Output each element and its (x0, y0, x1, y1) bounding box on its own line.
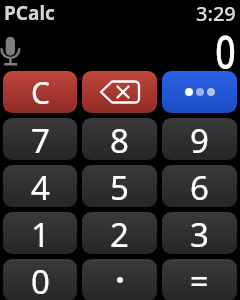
staticText: PCalc (4, 0, 55, 26)
button[interactable] (162, 71, 237, 113)
staticText: 2 (110, 212, 129, 254)
button[interactable]: 5 (82, 165, 157, 207)
button[interactable] (82, 259, 157, 300)
button[interactable]: 7 (3, 118, 77, 160)
staticText: 0 (215, 20, 236, 83)
button[interactable]: 9 (162, 118, 237, 160)
staticText: 5 (110, 165, 129, 207)
button[interactable]: 3 (162, 212, 237, 254)
button[interactable]: 6 (162, 165, 237, 207)
button[interactable]: 8 (82, 118, 157, 160)
staticText: 8 (110, 118, 129, 160)
staticText: = (190, 259, 209, 300)
button[interactable] (82, 71, 157, 113)
staticText: 6 (190, 165, 209, 207)
staticText: 9 (190, 118, 209, 160)
staticText: 1 (31, 212, 50, 254)
button[interactable]: 4 (3, 165, 77, 207)
button[interactable]: C (3, 71, 77, 113)
button[interactable]: 0 (3, 259, 77, 300)
staticText: 0 (31, 259, 50, 300)
button[interactable]: 2 (82, 212, 157, 254)
button[interactable] (0, 33, 22, 67)
button[interactable]: = (162, 259, 237, 300)
staticText: C (31, 72, 50, 113)
staticText: 3:29 (196, 0, 236, 27)
staticText: 4 (31, 165, 50, 207)
button[interactable]: 1 (3, 212, 77, 254)
staticText: 7 (31, 118, 50, 160)
staticText: 3 (190, 212, 209, 254)
